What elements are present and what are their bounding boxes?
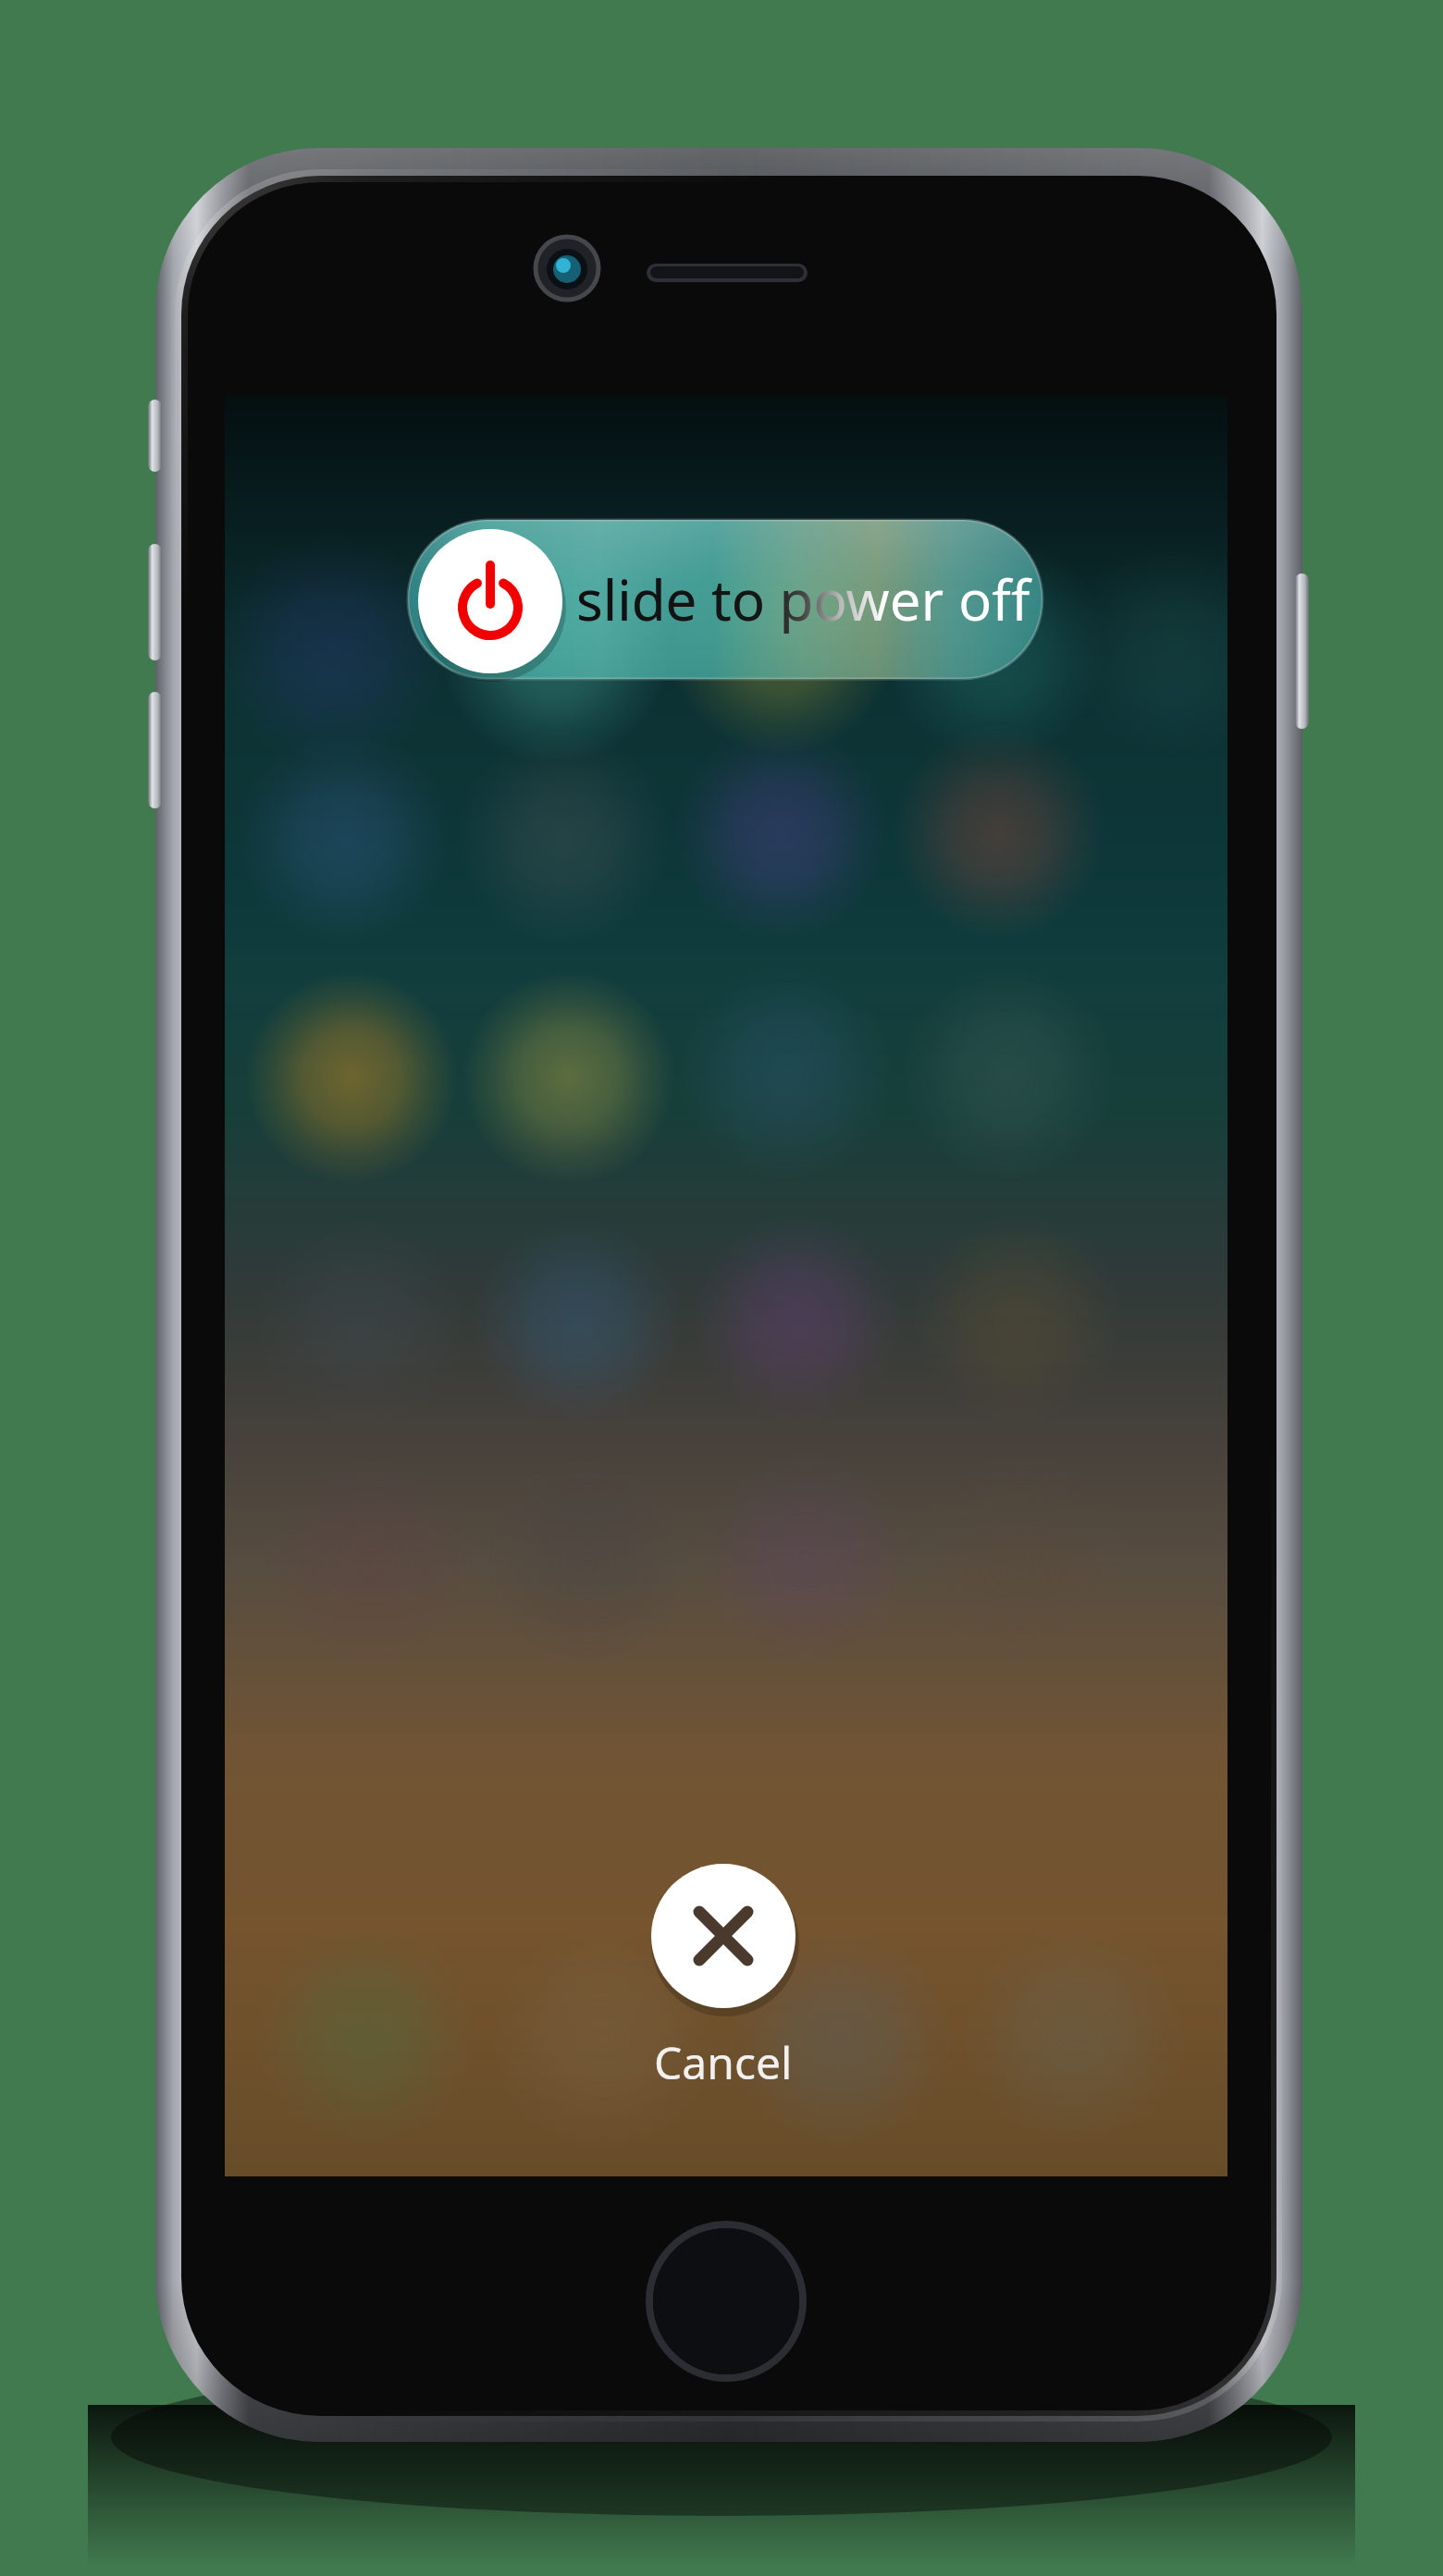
button[interactable]: Cancel [612, 1859, 834, 2109]
staticText: Cancel [654, 2032, 793, 2092]
staticText: slide to power off [576, 561, 1030, 637]
button[interactable]: slide to power off [408, 520, 1042, 679]
